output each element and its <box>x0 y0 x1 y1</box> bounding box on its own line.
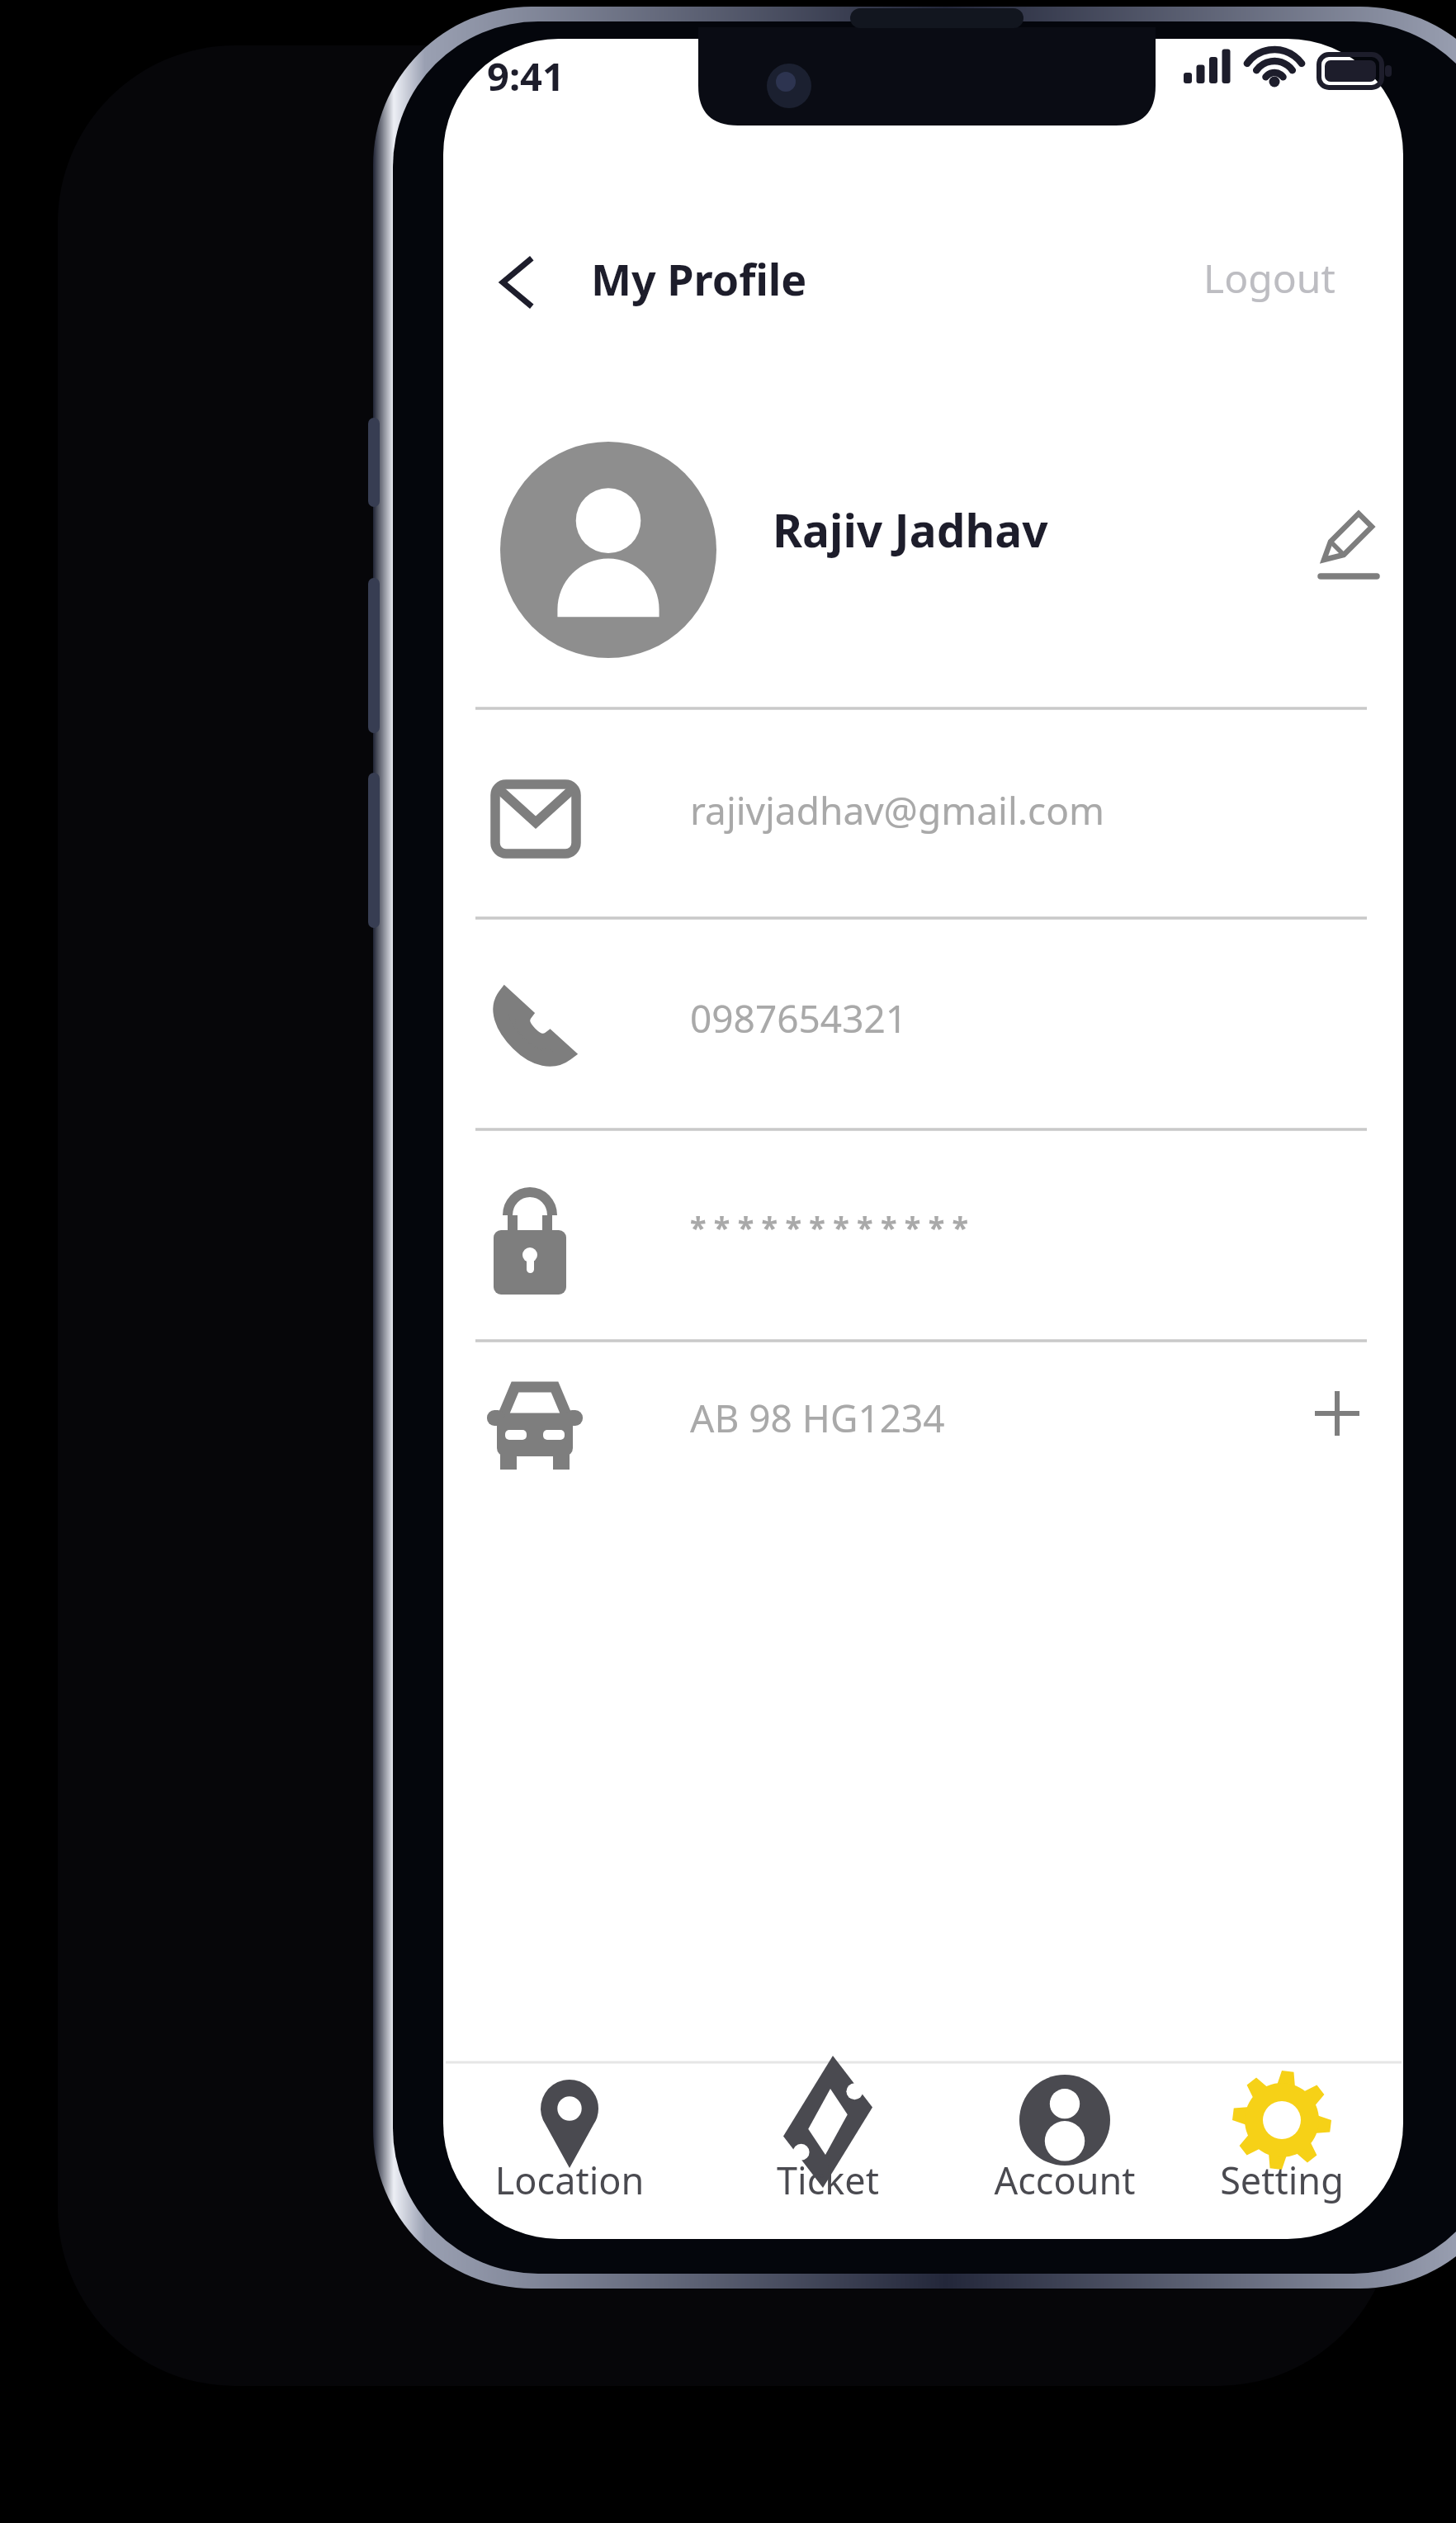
staticText: AB 98 HG1234 <box>690 1392 945 1444</box>
staticText: 0987654321 <box>690 992 908 1044</box>
staticText: 9:41 <box>487 50 565 102</box>
staticText: Location <box>446 2155 693 2205</box>
staticText: Setting <box>1158 2155 1406 2205</box>
button[interactable] <box>1177 2071 1387 2232</box>
button[interactable] <box>475 1148 1375 1333</box>
button[interactable] <box>723 2071 933 2232</box>
staticText: Logout <box>1203 251 1335 305</box>
staticText: Rajiv Jadhav <box>773 499 1048 561</box>
button[interactable] <box>475 935 1375 1121</box>
button[interactable] <box>459 2071 680 2232</box>
button[interactable] <box>956 2071 1177 2232</box>
staticText: Account <box>941 2155 1189 2205</box>
staticText: * * * * * * * * * * * * <box>690 1207 969 1247</box>
button[interactable]: Edit profile <box>1284 492 1383 593</box>
staticText: rajivjadhav@gmail.com <box>690 784 1104 836</box>
button[interactable]: Add vehicle <box>1301 1367 1395 1461</box>
staticText: Ticket <box>704 2155 952 2205</box>
staticText: My Profile <box>591 249 807 308</box>
button[interactable] <box>475 723 1375 910</box>
button[interactable] <box>1185 241 1380 324</box>
button[interactable] <box>475 1357 1304 1481</box>
button[interactable]: Back <box>482 244 561 324</box>
